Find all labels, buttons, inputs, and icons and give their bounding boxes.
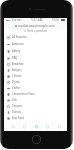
button[interactable]: Fast Food [4, 115, 67, 121]
staticText: BBQ [12, 56, 18, 60]
staticText: Burgers [12, 68, 22, 72]
button[interactable]: Deli [4, 97, 67, 103]
staticText: Donuts [12, 110, 21, 114]
staticText: marketview.example.com [18, 24, 56, 28]
staticText: Chinese [12, 74, 22, 78]
staticText: 100% [52, 18, 60, 22]
staticText: Deli [12, 98, 17, 102]
button[interactable]: Tabs [56, 123, 62, 129]
button[interactable]: Burgers [4, 67, 67, 73]
button[interactable]: Bookmarks [44, 123, 50, 129]
button[interactable]: Forward [21, 123, 27, 129]
button[interactable]: Back [10, 123, 16, 129]
button[interactable]: BBQ [4, 54, 67, 61]
button[interactable]: All Favorites [4, 33, 67, 40]
staticText: Drinks [12, 80, 20, 84]
staticText: Breakfast [12, 62, 24, 66]
button[interactable]: Desserts [4, 103, 67, 109]
button[interactable]: Donuts [4, 109, 67, 115]
button[interactable]: Share [33, 123, 39, 129]
staticText: Find a product [27, 29, 48, 33]
staticText: Carrier [12, 18, 22, 22]
staticText: 9:41 AM [31, 18, 43, 22]
button[interactable]: American [4, 40, 67, 47]
staticText: Fast Food [12, 116, 24, 120]
staticText: All Favorites [12, 35, 27, 39]
staticText: Bakery [12, 49, 21, 53]
staticText: Convenience Store [12, 92, 35, 96]
button[interactable]: Chinese [4, 73, 67, 79]
button[interactable]: Bakery [4, 47, 67, 54]
staticText: American [12, 42, 24, 46]
staticText: Desserts [12, 104, 23, 108]
button[interactable]: Convenience Store [4, 91, 67, 97]
button[interactable]: Drinks [4, 79, 67, 85]
button[interactable]: Coffee [4, 85, 67, 91]
staticText: Coffee [12, 86, 20, 90]
button[interactable]: Breakfast [4, 61, 67, 67]
